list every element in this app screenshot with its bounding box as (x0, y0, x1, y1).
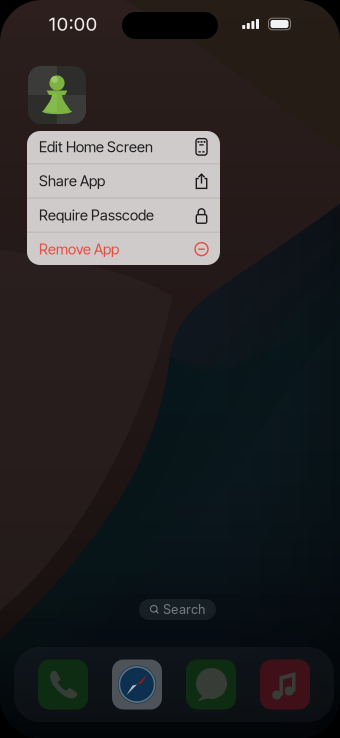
staticText: 10:00 (48, 13, 97, 35)
button[interactable]: Search (139, 599, 216, 620)
button[interactable]: Safari (112, 659, 162, 709)
staticText: Edit Home Screen (39, 138, 153, 156)
staticText: Search (163, 602, 205, 617)
button[interactable]: Edit Home Screen (27, 130, 220, 164)
staticText: Share App (39, 172, 105, 190)
staticText: Remove App (39, 240, 119, 258)
button[interactable]: Remove App (27, 232, 220, 266)
button[interactable]: Share App (27, 164, 220, 198)
button[interactable]: Messages (186, 659, 236, 709)
button[interactable]: Music (260, 659, 310, 709)
button[interactable]: Require Passcode (27, 198, 220, 232)
button[interactable]: Phone (38, 659, 88, 709)
staticText: Require Passcode (39, 206, 154, 224)
